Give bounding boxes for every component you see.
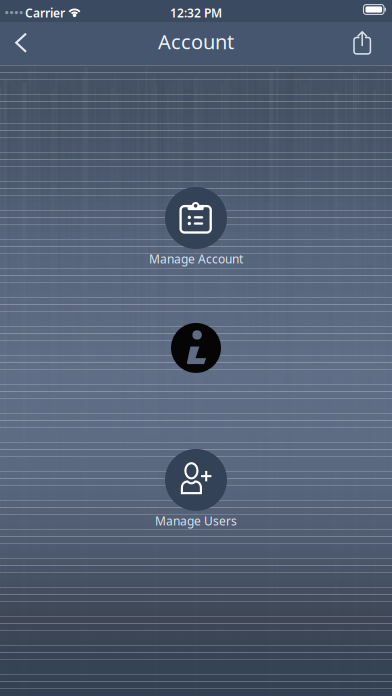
- button[interactable]: Manage Users: [155, 449, 237, 529]
- staticText: Manage Users: [155, 513, 237, 529]
- button[interactable]: Share: [344, 22, 388, 65]
- staticText: 12:32 PM: [170, 5, 222, 21]
- staticText: Account: [158, 28, 234, 55]
- button[interactable]: Back: [0, 22, 44, 65]
- button[interactable]: Manage Account: [149, 187, 243, 267]
- button[interactable]: Information: [171, 323, 221, 373]
- staticText: Manage Account: [149, 251, 243, 267]
- staticText: Carrier: [25, 5, 65, 21]
